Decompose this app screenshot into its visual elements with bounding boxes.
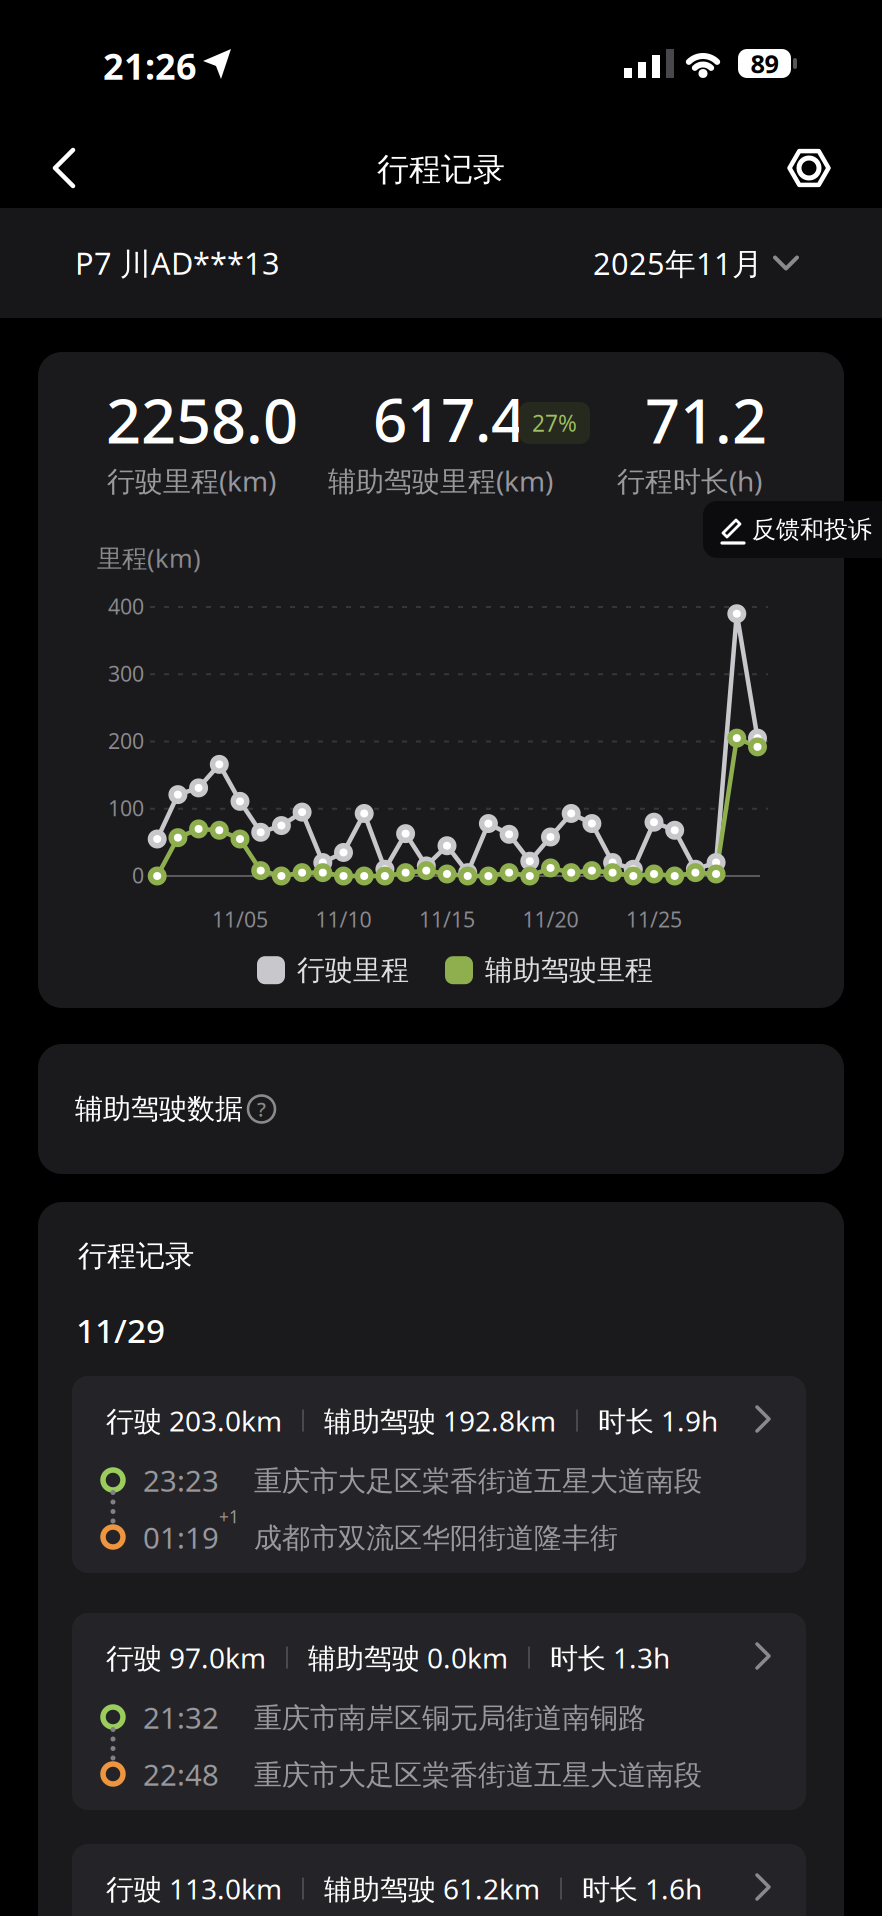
staticText: 重庆市大足区棠香街道五星大道南段 (254, 1758, 702, 1792)
staticText: 21:32 (143, 1698, 219, 1737)
staticText: 重庆市大足区棠香街道五星大道南段 (254, 1464, 702, 1498)
staticText: 11/29 (76, 1308, 165, 1352)
staticText: 行程时长(h) (617, 462, 762, 499)
staticText: 89 (750, 47, 778, 80)
button[interactable]: P7 川AD***13 (75, 208, 280, 318)
staticText: 辅助驾驶 61.2km (324, 1870, 540, 1907)
staticText: ? (257, 1096, 266, 1122)
staticText: 辅助驾驶 192.8km (324, 1402, 556, 1439)
staticText: 71.2 (645, 379, 767, 460)
staticText: 11/10 (315, 905, 371, 933)
staticText: 21:26 (103, 42, 197, 90)
staticText: 时长 1.6h (582, 1870, 702, 1907)
staticText: 23:23 (143, 1461, 219, 1500)
staticText: 辅助驾驶里程(km) (328, 462, 553, 499)
staticText: 100 (108, 794, 144, 822)
staticText: 200 (108, 726, 144, 755)
staticText: 11/05 (212, 905, 268, 933)
staticText: 行驶里程 (297, 953, 409, 987)
staticText: 行驶 203.0km (106, 1402, 282, 1439)
button[interactable]: 行驶 203.0km (72, 1376, 806, 1573)
button[interactable]: 2025年11月 (593, 208, 799, 318)
button[interactable]: 返回 (40, 136, 104, 200)
staticText: 11/15 (419, 905, 475, 933)
staticText: 2258.0 (106, 379, 298, 460)
staticText: 0 (132, 861, 144, 889)
staticText: 成都市双流区华阳街道隆丰街 (254, 1521, 618, 1555)
staticText: 行程记录 (377, 150, 505, 189)
staticText: 辅助驾驶 0.0km (308, 1639, 508, 1676)
button[interactable]: 辅助驾驶数据 (38, 1044, 844, 1174)
staticText: 重庆市南岸区铜元局街道南铜路 (254, 1701, 646, 1735)
staticText: 行驶 113.0km (106, 1870, 282, 1907)
staticText: 400 (108, 592, 144, 620)
staticText: 2025年11月 (593, 243, 763, 283)
staticText: 27% (532, 408, 577, 438)
staticText: 行驶 97.0km (106, 1639, 266, 1676)
staticText: 11/20 (522, 905, 578, 933)
staticText: 里程(km) (97, 541, 201, 575)
button[interactable]: 设置 (777, 136, 841, 200)
button[interactable]: 行驶 97.0km (72, 1613, 806, 1810)
button[interactable]: 行驶 113.0km (72, 1844, 806, 1916)
staticText: 22:48 (143, 1755, 219, 1794)
staticText: P7 川AD***13 (75, 243, 280, 283)
staticText: 辅助驾驶里程 (485, 953, 653, 987)
staticText: 时长 1.3h (550, 1639, 670, 1676)
button[interactable]: 反馈和投诉 (703, 501, 882, 558)
staticText: 时长 1.9h (598, 1402, 718, 1439)
staticText: +1 (219, 1505, 239, 1528)
staticText: 617.4 (373, 379, 525, 459)
staticText: 行程记录 (78, 1238, 194, 1274)
staticText: 300 (108, 659, 144, 687)
staticText: 行驶里程(km) (107, 462, 276, 499)
staticText: 01:19 (143, 1518, 219, 1557)
staticText: 反馈和投诉 (752, 515, 872, 544)
staticText: 11/25 (626, 905, 682, 933)
staticText: 辅助驾驶数据 (75, 1092, 243, 1126)
